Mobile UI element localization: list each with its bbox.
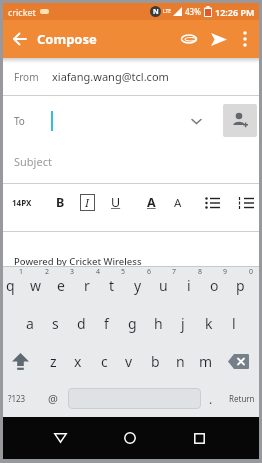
button[interactable]: A (167, 184, 189, 221)
button[interactable]: I (78, 184, 96, 221)
button[interactable]: U (105, 184, 127, 221)
staticText: To (14, 114, 25, 128)
button[interactable] (179, 417, 219, 459)
staticText: 9 (223, 267, 228, 277)
button[interactable] (40, 417, 80, 459)
button[interactable]: a (17, 304, 43, 342)
button[interactable]: . (201, 380, 221, 417)
staticText: N (153, 7, 159, 17)
button[interactable]: g (119, 304, 145, 342)
staticText: A (174, 195, 182, 211)
button[interactable]: y (125, 267, 151, 304)
button[interactable]: s (42, 304, 68, 342)
staticText: 1 (19, 267, 24, 277)
staticText: j (181, 314, 185, 333)
staticText: a (26, 314, 34, 333)
button[interactable]: t (99, 267, 125, 304)
button[interactable]: f (93, 304, 119, 342)
staticText: 5 (121, 267, 126, 277)
staticText: h (154, 314, 163, 333)
staticText: From (14, 70, 39, 84)
button[interactable]: b (142, 342, 168, 380)
button[interactable]: m (193, 342, 219, 380)
button[interactable] (110, 417, 150, 459)
button[interactable] (3, 20, 37, 58)
staticText: 8 (198, 267, 203, 277)
button[interactable]: @ (40, 380, 66, 417)
staticText: 0 (249, 267, 254, 277)
staticText: U (111, 194, 121, 211)
staticText: z (50, 352, 57, 371)
staticText: 3 (70, 267, 75, 277)
staticText: d (77, 314, 86, 333)
button[interactable]: ?123 (3, 380, 31, 417)
staticText: t (109, 276, 115, 295)
staticText: xiafang.wang@tcl.com (52, 69, 169, 84)
button[interactable]: A (140, 184, 162, 221)
staticText: ?123 (8, 393, 26, 404)
staticText: c (101, 352, 108, 371)
button[interactable]: e (48, 267, 74, 304)
button[interactable]: B (49, 184, 71, 221)
button[interactable] (175, 20, 203, 58)
staticText: s (52, 314, 59, 333)
button[interactable]: x (65, 342, 91, 380)
button[interactable]: j (170, 304, 196, 342)
staticText: l (232, 314, 236, 333)
button[interactable]: z (40, 342, 66, 380)
button[interactable]: h (145, 304, 171, 342)
button[interactable]: d (68, 304, 94, 342)
button[interactable]: i (176, 267, 202, 304)
staticText: 14PX (12, 197, 32, 208)
staticText: 12:26 PM (215, 6, 255, 18)
staticText: f (104, 314, 109, 333)
staticText: i (187, 276, 191, 295)
staticText: n (176, 352, 185, 371)
button[interactable]: l (221, 304, 247, 342)
staticText: x (74, 352, 82, 371)
staticText: 2 (45, 267, 50, 277)
staticText: LTE (163, 8, 172, 15)
staticText: r (84, 276, 90, 295)
staticText: Compose (37, 30, 97, 48)
button[interactable]: q (0, 267, 23, 304)
button[interactable] (223, 104, 257, 137)
staticText: . (209, 391, 213, 407)
button[interactable] (68, 388, 201, 409)
button[interactable]: o (201, 267, 227, 304)
button[interactable] (223, 342, 253, 380)
button[interactable]: c (91, 342, 117, 380)
button[interactable]: w (23, 267, 49, 304)
button[interactable] (205, 20, 233, 58)
staticText: p (236, 276, 245, 295)
staticText: q (6, 276, 15, 295)
staticText: e (57, 276, 65, 295)
staticText: 4 (96, 267, 101, 277)
staticText: g (128, 314, 137, 333)
button[interactable]: p (227, 267, 253, 304)
button[interactable]: Return (225, 380, 259, 417)
staticText: k (205, 314, 213, 333)
staticText: Subject (14, 154, 52, 169)
staticText: @ (48, 391, 58, 406)
button[interactable] (234, 184, 258, 221)
button[interactable] (187, 99, 205, 143)
button[interactable] (233, 20, 257, 58)
staticText: b (151, 352, 160, 371)
button[interactable]: 14PX (5, 184, 39, 221)
button[interactable]: v (116, 342, 142, 380)
button[interactable]: r (74, 267, 100, 304)
staticText: cricket (8, 6, 36, 18)
staticText: Return (229, 393, 255, 404)
button[interactable]: n (167, 342, 193, 380)
button[interactable] (5, 342, 35, 380)
staticText: o (210, 276, 219, 295)
staticText: u (159, 276, 168, 295)
button[interactable] (200, 184, 224, 221)
staticText: v (125, 352, 133, 371)
staticText: 43% (185, 6, 201, 17)
staticText: I (85, 195, 90, 210)
staticText: B (56, 194, 65, 211)
button[interactable]: u (150, 267, 176, 304)
button[interactable]: k (196, 304, 222, 342)
